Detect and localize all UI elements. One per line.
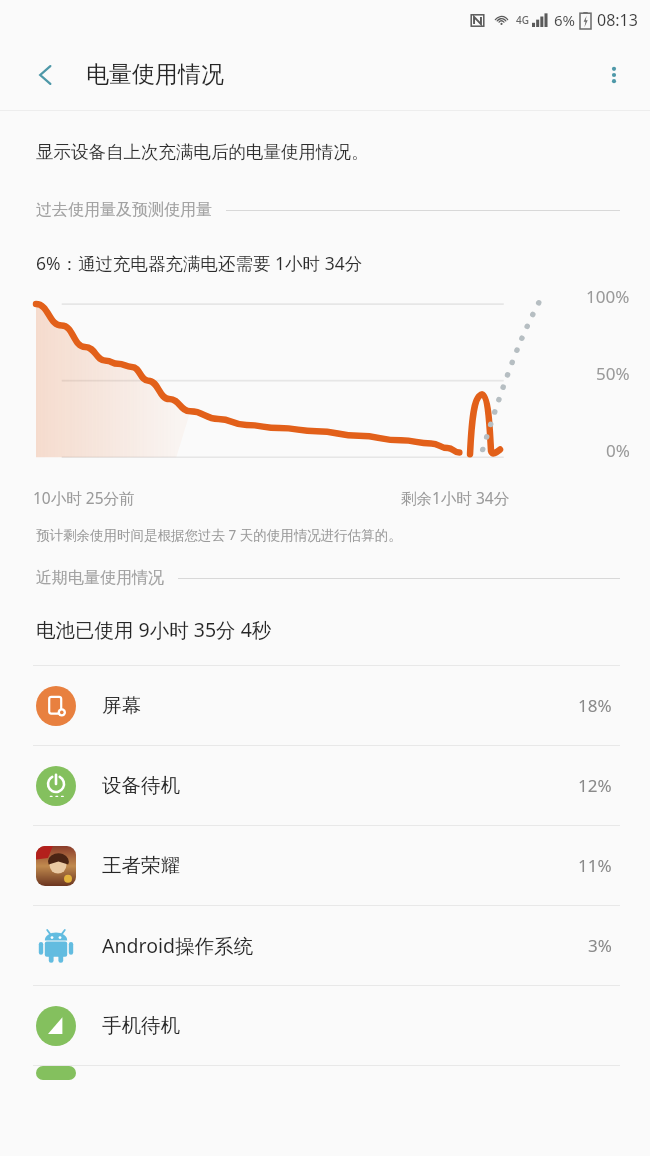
staticText: 电池已使用 9小时 35分 4秒 [36, 616, 272, 643]
staticText: 6%：通过充电器充满电还需要 1小时 34分 [36, 251, 363, 275]
button[interactable]: Back [20, 49, 72, 101]
staticText: 显示设备自上次充满电后的电量使用情况。 [36, 141, 369, 163]
staticText: 100% [586, 285, 630, 308]
staticText: 屏幕 [102, 693, 141, 718]
staticText: 3% [588, 934, 612, 957]
staticText: 6% [554, 10, 576, 30]
staticText: 剩余1小时 34分 [401, 487, 510, 508]
staticText: 12% [578, 774, 612, 797]
staticText: 0% [606, 439, 630, 462]
button[interactable]: 手机待机 [0, 986, 650, 1065]
staticText: 王者荣耀 [102, 853, 180, 878]
staticText: 过去使用量及预测使用量 [36, 200, 212, 220]
staticText: 08:13 [597, 9, 638, 31]
staticText: 4G [516, 13, 529, 27]
staticText: 手机待机 [102, 1013, 180, 1038]
button[interactable]: Android操作系统 [0, 906, 650, 985]
staticText: Android操作系统 [102, 932, 253, 959]
staticText: 50% [596, 362, 630, 385]
staticText: 预计剩余使用时间是根据您过去 7 天的使用情况进行估算的。 [36, 526, 402, 544]
staticText: 设备待机 [102, 773, 180, 798]
staticText: 11% [578, 854, 612, 877]
staticText: 18% [578, 694, 612, 717]
button[interactable]: 王者荣耀 [0, 826, 650, 905]
staticText: 10小时 25分前 [33, 487, 135, 508]
button[interactable]: 设备待机 [0, 746, 650, 825]
button[interactable]: More options [588, 49, 640, 101]
staticText: 近期电量使用情况 [36, 568, 164, 588]
staticText: 电量使用情况 [86, 60, 224, 89]
button[interactable]: 屏幕 [0, 666, 650, 745]
